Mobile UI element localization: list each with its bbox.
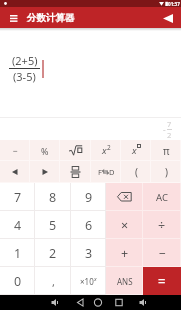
button[interactable]: 5 [35,211,71,239]
staticText: + [121,245,129,262]
staticText: 01:37 [168,1,180,7]
staticText: % [41,145,49,157]
button[interactable]: , [35,267,71,295]
button[interactable]: AC [143,183,181,211]
staticText: 7 [14,189,22,206]
staticText: (2+5) [12,53,38,68]
button[interactable]: 7 [0,183,35,211]
button[interactable]: ×10 [71,267,106,295]
button[interactable] [7,11,21,25]
staticText: ÷ [158,217,166,234]
staticText: , [52,274,55,289]
staticText: π [163,144,170,158]
button[interactable] [60,140,91,161]
button[interactable]: ÷ [143,211,181,239]
staticText: 9 [85,189,93,206]
button[interactable]: ( [121,161,151,183]
button[interactable]: x [121,140,151,161]
staticText: 1 [14,245,22,262]
staticText: 2 [107,143,111,152]
button[interactable]: 6 [71,211,106,239]
button[interactable]: − [143,239,181,267]
button[interactable]: − [0,140,30,161]
button[interactable]: π [151,140,181,161]
button[interactable]: 2 [35,239,71,267]
staticText: F [98,167,102,177]
button[interactable]: 1 [0,239,35,267]
button[interactable] [106,183,143,211]
button[interactable]: 8 [35,183,71,211]
staticText: ANS [117,276,133,287]
button[interactable]: 3 [71,239,106,267]
staticText: x [94,275,97,282]
button[interactable]: x [91,140,121,161]
staticText: x [132,144,137,157]
staticText: AC [156,191,168,204]
button[interactable] [0,161,30,183]
button[interactable]: ) [151,161,181,183]
staticText: (3-5) [13,69,36,84]
staticText: × [121,217,129,234]
staticText: ×10 [80,276,94,287]
button[interactable]: 9 [71,183,106,211]
button[interactable]: 4 [0,211,35,239]
button[interactable]: = [143,267,181,295]
button[interactable]: ANS [106,267,143,295]
staticText: 4 [14,217,22,234]
staticText: x [102,144,107,157]
staticText: 分数计算器 [27,12,75,24]
staticText: - [163,124,166,135]
staticText: − [13,145,18,157]
button[interactable]: % [30,140,60,161]
staticText: ) [165,165,168,179]
button[interactable]: × [106,211,143,239]
staticText: 3 [85,245,93,262]
staticText: D [109,167,115,177]
staticText: 2 [49,245,57,262]
staticText: 8 [49,189,57,206]
staticText: = [158,272,166,290]
staticText: 5 [49,217,57,234]
button[interactable] [30,161,60,183]
staticText: 0 [14,273,22,290]
staticText: − [159,245,166,261]
button[interactable] [60,161,91,183]
button[interactable]: + [106,239,143,267]
staticText: 6 [85,217,93,234]
button[interactable]: 0 [0,267,35,295]
button[interactable] [162,12,174,24]
staticText: 7 [167,119,172,129]
button[interactable]: F [91,161,121,183]
staticText: 2 [167,130,172,140]
staticText: ( [135,165,138,179]
